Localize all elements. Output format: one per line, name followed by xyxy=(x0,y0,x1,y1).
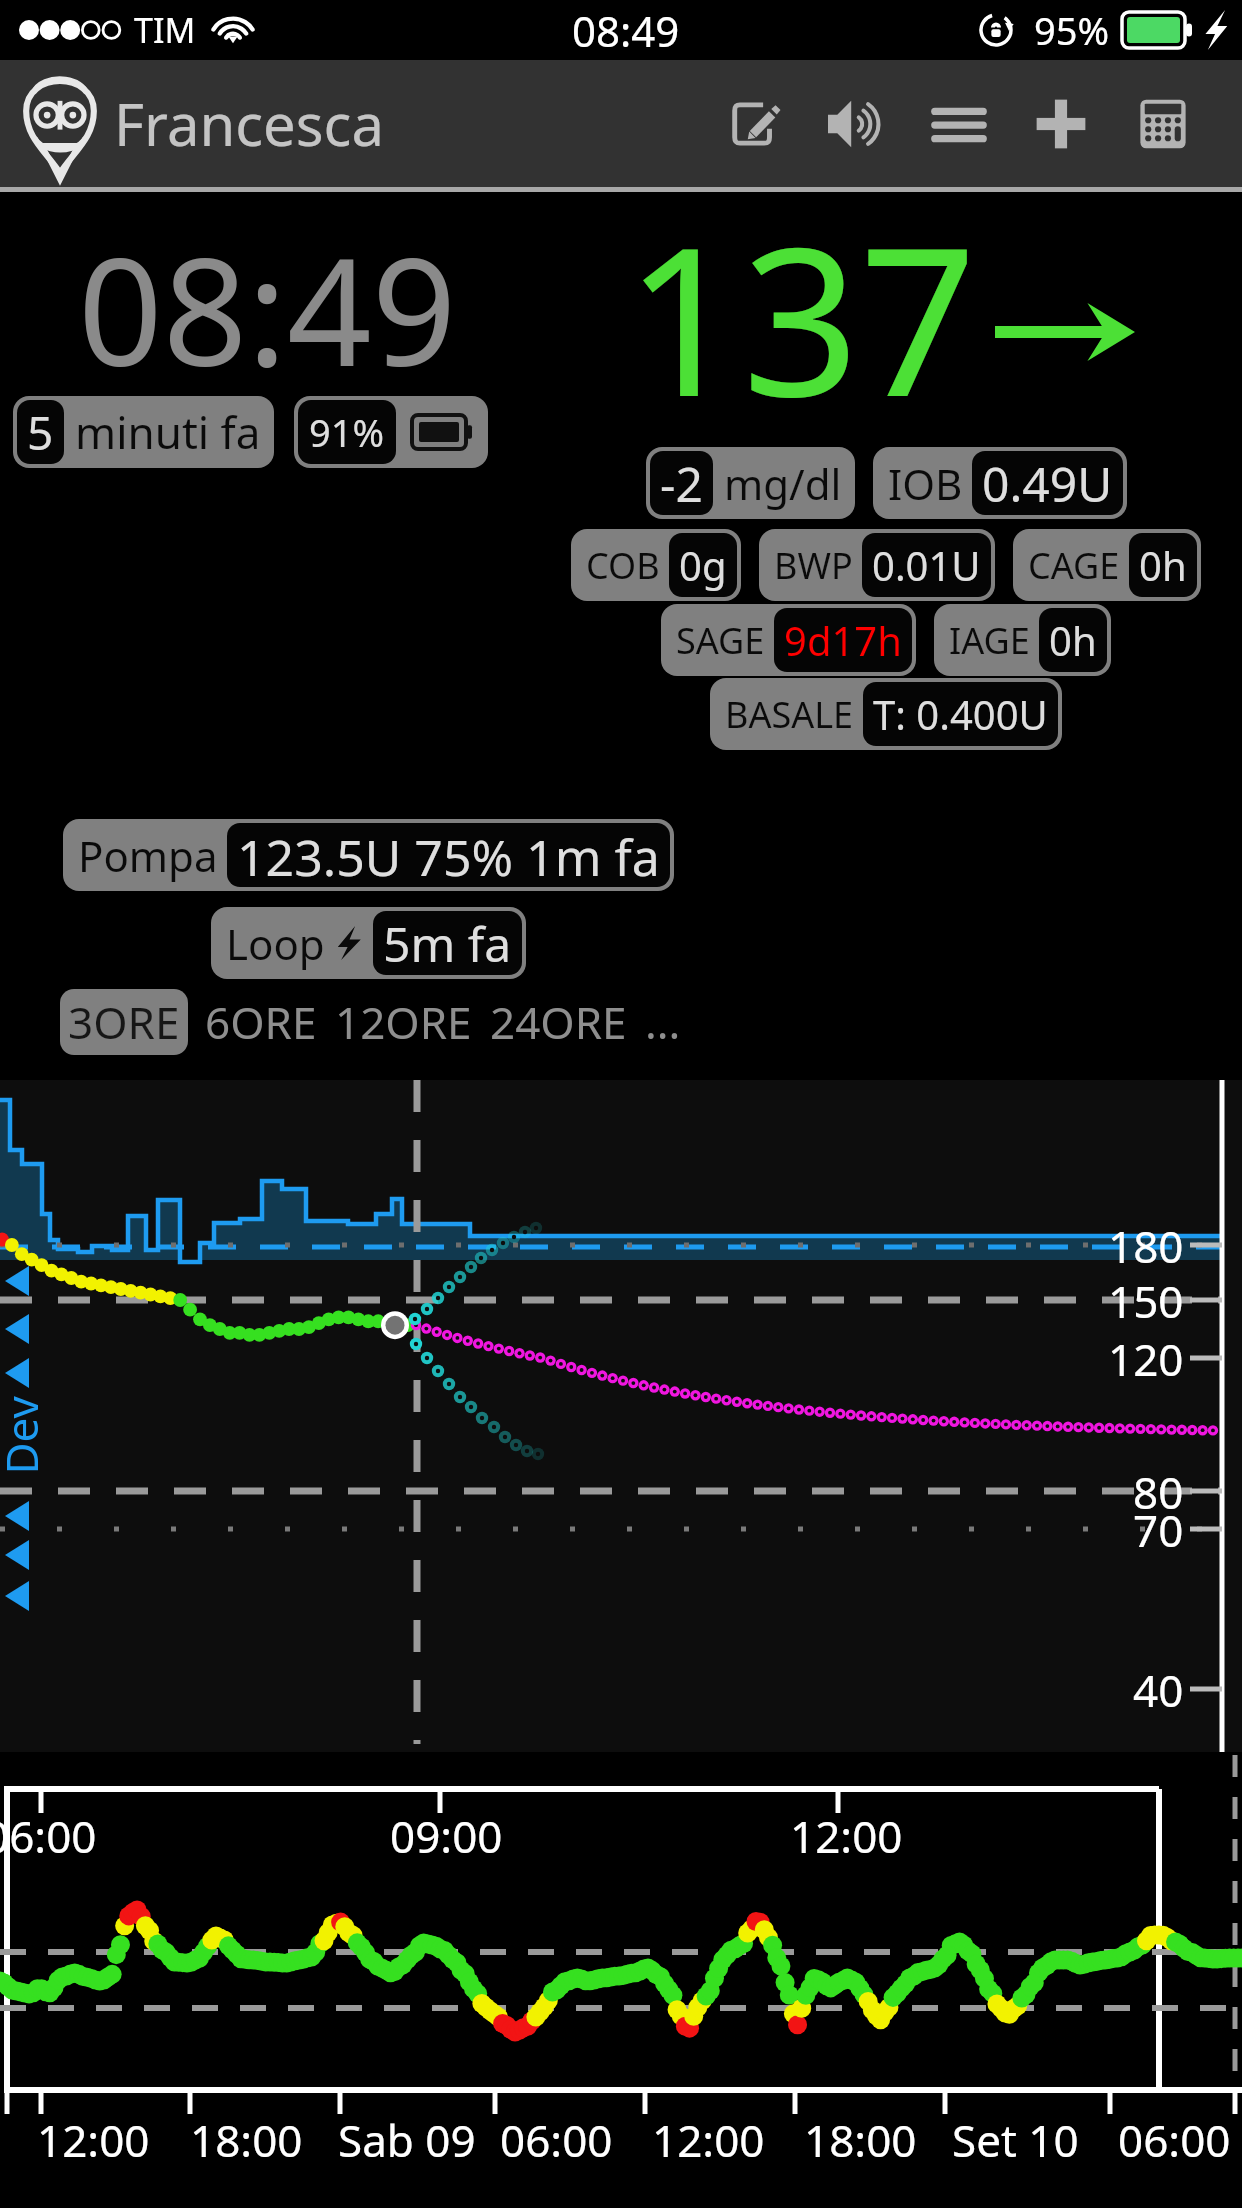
staticText: T: 0.400U xyxy=(873,687,1048,741)
staticText: Dev xyxy=(0,1395,50,1474)
button[interactable]: History range selector xyxy=(0,1760,1242,2208)
staticText: 24ORE xyxy=(490,992,627,1052)
staticText: 95% xyxy=(1034,4,1110,56)
button[interactable]: Sound xyxy=(806,60,908,187)
staticText: 18:00 xyxy=(804,2110,917,2170)
button[interactable]: BWP xyxy=(759,529,995,601)
staticText: 80 xyxy=(1133,1462,1184,1522)
staticText: 70 xyxy=(1133,1500,1184,1560)
button[interactable]: 6ORE xyxy=(196,989,326,1055)
staticText: 6ORE xyxy=(205,992,317,1052)
button[interactable]: Calculator xyxy=(1112,60,1214,187)
staticText: BASALE xyxy=(725,690,854,739)
staticText: 08:49 xyxy=(78,208,457,410)
button[interactable]: ... xyxy=(636,989,690,1055)
staticText: 0.01U xyxy=(872,538,981,592)
staticText: 5 xyxy=(27,401,54,464)
staticText: 9d17h xyxy=(784,613,902,667)
staticText: 12:00 xyxy=(37,2110,150,2170)
staticText: 3ORE xyxy=(68,992,180,1052)
button[interactable]: BASALE xyxy=(710,678,1062,750)
button[interactable]: 3ORE xyxy=(60,989,188,1055)
button[interactable]: Menu xyxy=(908,60,1010,187)
staticText: 09:00 xyxy=(390,1806,503,1866)
staticText: Set 10 xyxy=(952,2110,1079,2170)
staticText: mg/dl xyxy=(724,455,842,512)
staticText: 0h xyxy=(1139,538,1187,592)
button[interactable]: 5 xyxy=(13,396,274,468)
button[interactable]: Loop xyxy=(211,907,526,979)
button[interactable]: 91% xyxy=(294,396,488,468)
staticText: 12ORE xyxy=(335,992,472,1052)
staticText: 0.49U xyxy=(982,451,1113,515)
staticText: Loop xyxy=(226,915,325,972)
button[interactable]: 12ORE xyxy=(326,989,481,1055)
button[interactable]: -2 xyxy=(646,447,855,519)
staticText: 180 xyxy=(1108,1216,1184,1276)
staticText: minuti fa xyxy=(75,402,261,462)
staticText: 91% xyxy=(309,406,385,458)
button[interactable]: IOB xyxy=(873,447,1127,519)
button[interactable]: Glucose chart xyxy=(0,1080,1242,1752)
button[interactable]: COB xyxy=(571,529,741,601)
button[interactable]: 24ORE xyxy=(481,989,636,1055)
staticText: 06:00 xyxy=(500,2110,613,2170)
staticText: Pompa xyxy=(78,827,218,884)
staticText: BWP xyxy=(774,541,853,590)
staticText: IOB xyxy=(888,455,963,512)
staticText: -2 xyxy=(660,451,703,515)
button[interactable]: IAGE xyxy=(934,604,1111,676)
staticText: IAGE xyxy=(949,616,1030,665)
staticText: 12:00 xyxy=(790,1806,903,1866)
staticText: 150 xyxy=(1108,1271,1184,1331)
staticText: TIM xyxy=(134,7,196,53)
button[interactable]: Pompa xyxy=(63,819,674,891)
button[interactable]: Nightscout xyxy=(24,74,96,174)
button[interactable]: Add xyxy=(1010,60,1112,187)
staticText: 06:00 xyxy=(1118,2110,1231,2170)
staticText: 12:00 xyxy=(652,2110,765,2170)
staticText: 0g xyxy=(679,538,727,592)
button[interactable]: CAGE xyxy=(1013,529,1201,601)
staticText: 06:00 xyxy=(0,1806,97,1866)
staticText: 08:49 xyxy=(572,2,680,59)
button[interactable]: SAGE xyxy=(661,604,916,676)
staticText: 123.5U 75% 1m fa xyxy=(237,823,660,887)
staticText: SAGE xyxy=(676,616,765,665)
staticText: COB xyxy=(586,541,660,590)
staticText: Francesca xyxy=(114,84,384,163)
staticText: 0h xyxy=(1049,613,1097,667)
staticText: 5m fa xyxy=(383,911,512,975)
staticText: 120 xyxy=(1108,1329,1184,1389)
staticText: Sab 09 xyxy=(338,2110,476,2170)
button[interactable]: Edit xyxy=(704,60,806,187)
staticText: 18:00 xyxy=(190,2110,303,2170)
staticText: 137 xyxy=(625,177,977,456)
staticText: CAGE xyxy=(1028,541,1120,590)
staticText: 40 xyxy=(1133,1660,1184,1720)
staticText: ... xyxy=(645,992,681,1052)
